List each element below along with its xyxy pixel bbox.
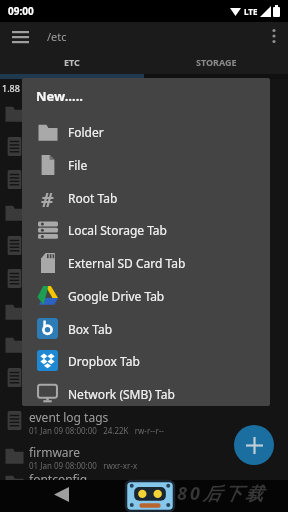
staticText: ETC <box>64 56 80 68</box>
button[interactable]: Google Drive Tab <box>22 279 270 312</box>
staticText: Box Tab <box>68 321 113 337</box>
staticText: Root Tab <box>68 190 118 206</box>
staticText: # <box>41 187 54 208</box>
button[interactable] <box>12 28 29 45</box>
button[interactable]: Network (SMB) Tab <box>22 377 270 406</box>
button[interactable]: # <box>22 181 270 214</box>
button[interactable]: fontconfig <box>0 470 288 501</box>
button[interactable]: File <box>22 148 270 181</box>
button[interactable] <box>54 487 69 502</box>
button[interactable]: Dropbox Tab <box>22 344 270 377</box>
button[interactable]: Folder <box>22 115 270 148</box>
button[interactable]: External SD Card Tab <box>22 246 270 279</box>
staticText: 09:00 <box>8 4 34 18</box>
staticText: 80后下载 <box>177 481 266 506</box>
staticText: fontconfig <box>29 471 88 487</box>
staticText: Dropbox Tab <box>68 353 140 369</box>
staticText: Folder <box>68 124 104 140</box>
button[interactable]: firmware <box>0 443 288 474</box>
button[interactable] <box>234 425 274 465</box>
staticText: 1.88 <box>2 82 20 94</box>
staticText: File <box>68 157 88 173</box>
staticText: firmware <box>29 444 81 460</box>
staticText: /etc <box>47 29 67 44</box>
staticText: event log tags <box>29 409 109 425</box>
button[interactable]: ETC <box>0 50 144 74</box>
button[interactable] <box>272 28 276 44</box>
button[interactable]: STORAGE <box>144 50 288 74</box>
staticText: 01 Jan 09 08:00:00 rwxr-xr-x <box>29 460 138 471</box>
staticText: New..... <box>36 87 83 105</box>
staticText: STORAGE <box>196 56 237 68</box>
staticText: LTE <box>244 6 258 17</box>
staticText: External SD Card Tab <box>68 255 186 271</box>
button[interactable]: Box Tab <box>22 312 270 345</box>
button[interactable]: Local Storage Tab <box>22 213 270 246</box>
staticText: Local Storage Tab <box>68 222 167 238</box>
staticText: Network (SMB) Tab <box>68 386 175 402</box>
staticText: 01 Jan 09 08:00:00 24.22K rw-r--r-- <box>29 425 164 436</box>
button[interactable]: event log tags <box>0 408 288 439</box>
staticText: Google Drive Tab <box>68 288 165 304</box>
